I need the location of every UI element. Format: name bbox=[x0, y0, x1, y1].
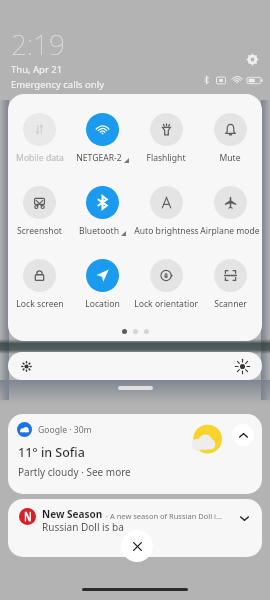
button[interactable]: Auto brightness bbox=[134, 186, 198, 237]
button[interactable]: Lock orientation bbox=[134, 259, 198, 310]
button[interactable] bbox=[8, 352, 262, 380]
staticText: 11° in Sofia bbox=[18, 444, 85, 461]
button[interactable]: Scanner bbox=[198, 259, 262, 310]
staticText: Screenshot bbox=[17, 225, 62, 237]
button[interactable]: Mute bbox=[198, 113, 262, 164]
staticText: Flashlight bbox=[146, 152, 186, 164]
staticText: Russian Doll is ba bbox=[42, 520, 124, 534]
button[interactable]: Lock screen bbox=[8, 259, 71, 310]
button[interactable]: Flashlight bbox=[134, 113, 198, 164]
button[interactable]: Location bbox=[71, 259, 134, 310]
staticText: Partly cloudy · See more bbox=[18, 465, 131, 479]
staticText: Location bbox=[85, 298, 120, 310]
staticText: Lock orientation bbox=[134, 298, 198, 310]
staticText: · A new season of Russian Doll i... bbox=[106, 511, 223, 521]
button[interactable]: Clear all notifications bbox=[121, 530, 153, 562]
button[interactable]: Airplane mode bbox=[198, 186, 262, 237]
staticText: Thu, Apr 21 bbox=[11, 63, 63, 76]
button[interactable]: New Season bbox=[8, 499, 262, 557]
staticText: Mute bbox=[219, 152, 241, 164]
staticText: Bluetooth bbox=[79, 225, 119, 237]
button[interactable]: Google · 30m bbox=[8, 414, 262, 494]
button[interactable]: Mobile data bbox=[8, 113, 71, 164]
staticText: NETGEAR-2 bbox=[76, 152, 122, 164]
button[interactable]: Settings bbox=[245, 52, 259, 66]
staticText: Airplane mode bbox=[200, 225, 260, 237]
staticText: New Season bbox=[42, 507, 103, 521]
button[interactable]: NETGEAR-2 bbox=[71, 113, 134, 164]
button[interactable]: Expand bbox=[236, 510, 252, 526]
staticText: Scanner bbox=[214, 298, 247, 310]
staticText: Mobile data bbox=[16, 152, 64, 164]
button[interactable]: Collapse bbox=[232, 424, 254, 446]
staticText: 2:19 bbox=[11, 25, 66, 63]
button[interactable]: Bluetooth bbox=[71, 186, 134, 237]
staticText: Lock screen bbox=[16, 298, 64, 310]
staticText: Emergency calls only bbox=[11, 78, 105, 91]
button[interactable]: Screenshot bbox=[8, 186, 71, 237]
staticText: Google · 30m bbox=[38, 424, 92, 436]
staticText: Auto brightness bbox=[134, 225, 198, 237]
